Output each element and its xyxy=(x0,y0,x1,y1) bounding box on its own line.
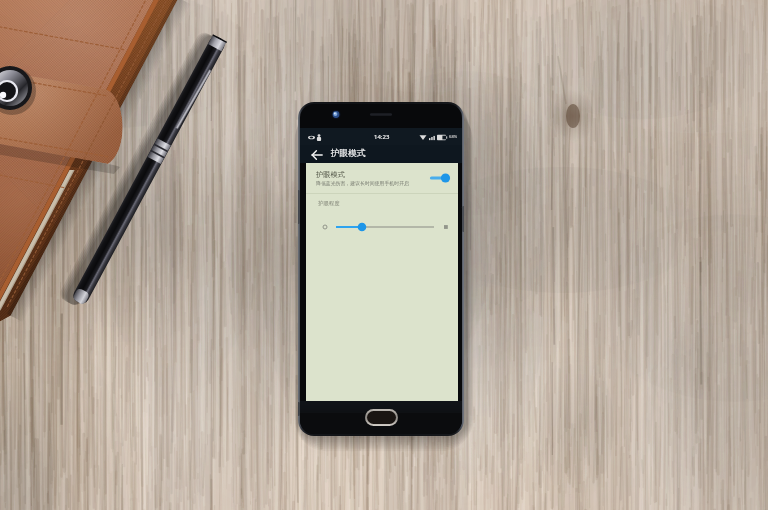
staticText: 68% xyxy=(449,134,458,140)
button[interactable] xyxy=(306,219,458,235)
button[interactable]: Eye care toggle xyxy=(430,171,452,185)
button[interactable]: Back xyxy=(308,146,325,163)
staticText: 降低蓝光伤害，建议长时间使用手机时开启 xyxy=(316,180,409,186)
staticText: 14:23 xyxy=(374,133,390,141)
staticText: 护眼程度 xyxy=(318,200,340,207)
button[interactable]: Home xyxy=(365,409,398,426)
staticText: 护眼模式 xyxy=(331,148,366,159)
staticText: 护眼模式 xyxy=(316,170,345,179)
button[interactable]: 护眼模式 xyxy=(306,163,458,193)
